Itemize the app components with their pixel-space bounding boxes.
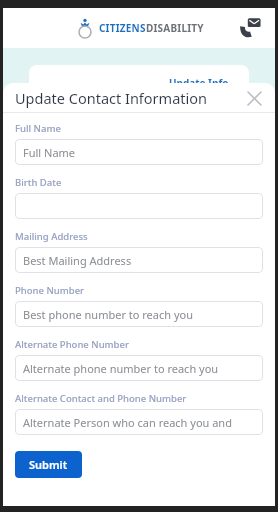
staticText: Update Contact Information	[15, 88, 208, 108]
button[interactable]: Best Mailing Address	[15, 247, 263, 273]
button[interactable]	[15, 193, 263, 219]
staticText: Update Info	[169, 76, 229, 90]
staticText: Full Name	[15, 122, 61, 135]
staticText: Alternate Phone Number	[15, 338, 129, 351]
button[interactable]: Best phone number to reach you	[15, 301, 263, 327]
staticText: CITIZENS	[99, 21, 146, 35]
staticText: Full Name	[23, 145, 76, 160]
button[interactable]: Close	[243, 87, 265, 109]
button[interactable]: Contact us	[235, 13, 265, 43]
staticText: Mailing Address	[15, 230, 88, 243]
button[interactable]: Alternate Person who can reach you and t…	[15, 409, 263, 435]
staticText: Best Mailing Address	[23, 253, 132, 268]
staticText: Alternate Person who can reach you and t…	[23, 415, 255, 430]
staticText: Alternate Contact and Phone Number	[15, 392, 187, 405]
staticText: Phone Number	[15, 284, 85, 297]
staticText: Best phone number to reach you	[23, 307, 193, 322]
staticText: DISABILITY	[146, 21, 204, 35]
staticText: Birth Date	[15, 176, 62, 189]
staticText: Submit	[29, 457, 68, 472]
staticText: Alternate phone number to reach you	[23, 361, 219, 376]
button[interactable]: Full Name	[15, 139, 263, 165]
button[interactable]: Submit	[15, 451, 82, 478]
button[interactable]: Alternate phone number to reach you	[15, 355, 263, 381]
